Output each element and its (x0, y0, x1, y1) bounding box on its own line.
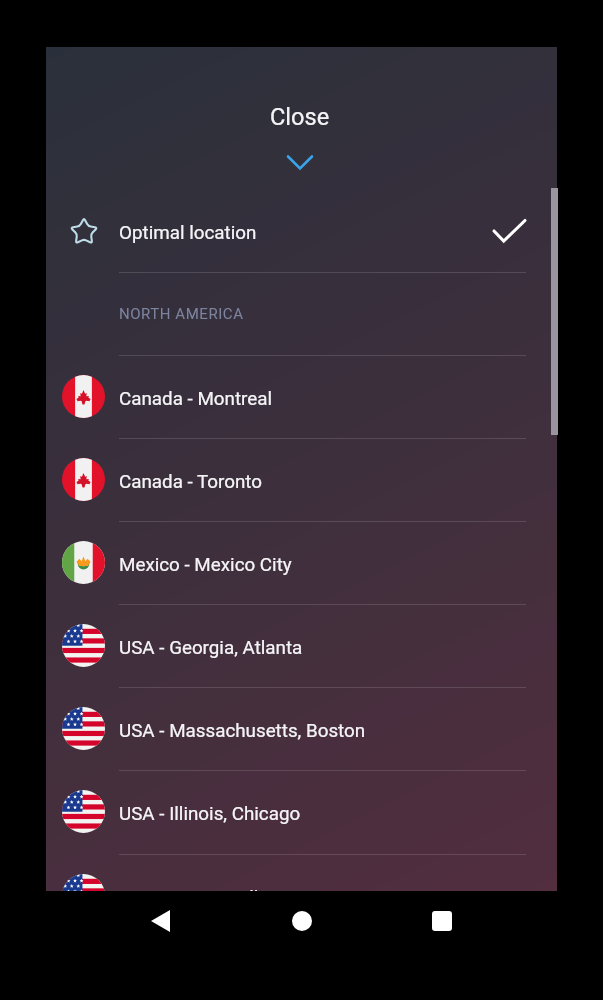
button[interactable]: Recents (416, 895, 468, 947)
button[interactable]: Canada - Toronto (46, 438, 557, 521)
button[interactable]: Mexico - Mexico City (46, 521, 557, 604)
staticText: Canada - Toronto (119, 471, 263, 493)
button[interactable]: Optimal location (46, 189, 557, 272)
staticText: USA - Georgia, Atlanta (119, 637, 303, 659)
button[interactable]: USA - Texas, Dallas (46, 854, 557, 937)
staticText: Optimal location (119, 222, 257, 244)
button[interactable]: USA - Georgia, Atlanta (46, 604, 557, 687)
staticText: NORTH AMERICA (119, 305, 244, 323)
button[interactable]: Close (46, 47, 557, 189)
staticText: Mexico - Mexico City (119, 554, 292, 576)
button[interactable]: Home (276, 895, 328, 947)
button[interactable]: USA - Massachusetts, Boston (46, 687, 557, 770)
button[interactable]: Back (134, 895, 186, 947)
staticText: USA - Illinois, Chicago (119, 803, 301, 825)
staticText: USA - Massachusetts, Boston (119, 720, 366, 742)
staticText: USA - Texas, Dallas (119, 887, 279, 909)
staticText: Close (270, 103, 330, 131)
button[interactable]: USA - Illinois, Chicago (46, 770, 557, 853)
button[interactable]: Canada - Montreal (46, 355, 557, 438)
staticText: Canada - Montreal (119, 388, 273, 410)
